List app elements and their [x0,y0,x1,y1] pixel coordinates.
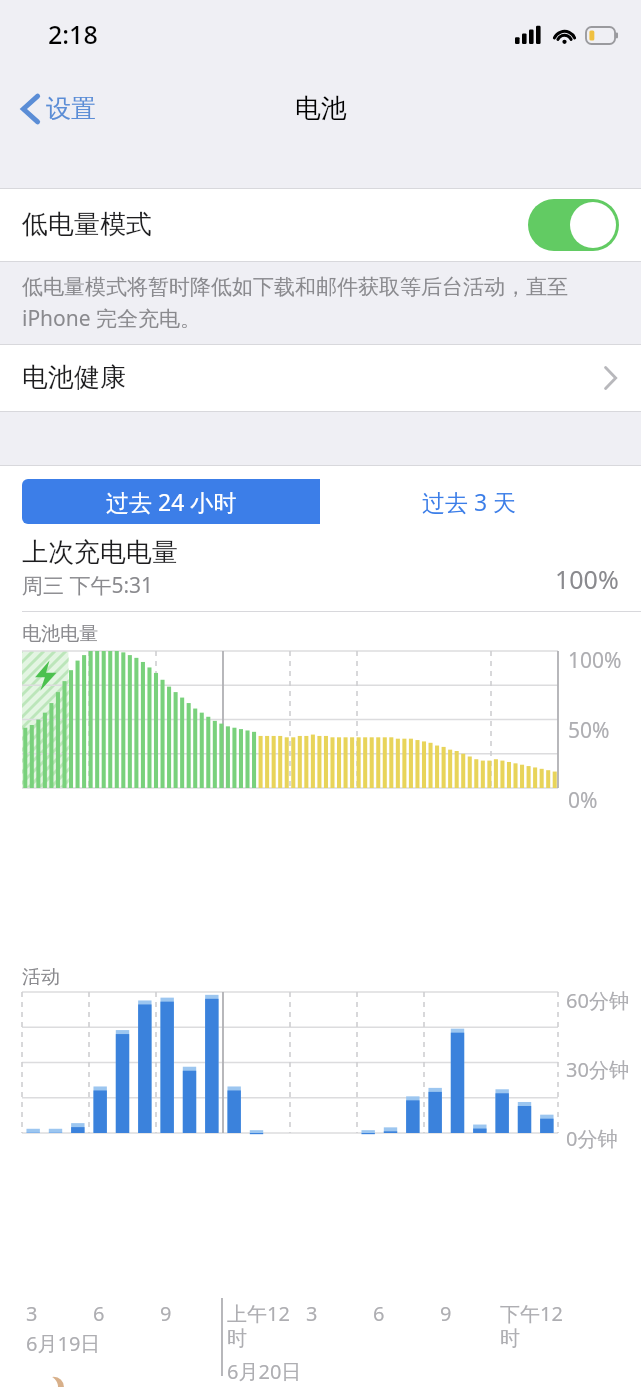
staticText: 低电量模式 [22,208,152,241]
staticText: 60分钟 [566,987,629,1014]
staticText: 2:18 [48,17,98,51]
staticText: 6 [93,1300,105,1327]
staticText: 0分钟 [566,1125,618,1152]
staticText: 100% [555,562,619,596]
staticText: 30分钟 [566,1056,629,1083]
staticText: 上午12 时 [227,1300,290,1351]
staticText: 低电量模式将暂时降低如下载和邮件获取等后台活动，直至 iPhone 完全充电。 [22,272,617,332]
staticText: 6月20日 [227,1358,302,1385]
button[interactable]: 过去 3 天 [320,479,619,524]
staticText: 3 [26,1300,38,1327]
staticText: 周三 下午5:31 [22,571,154,600]
staticText: 电池健康 [22,361,126,394]
staticText: 0% [568,786,598,815]
staticText: 3 [306,1300,318,1327]
staticText: 50% [568,716,610,745]
staticText: 上次充电电量 [22,536,178,569]
staticText: 9 [440,1300,452,1327]
staticText: 电池电量 [22,622,98,646]
staticText: 下午12 时 [500,1300,563,1351]
staticText: 活动 [22,965,60,989]
staticText: 9 [160,1300,172,1327]
staticText: 过去 24 小时 [106,486,237,517]
staticText: 设置 [46,93,96,124]
button[interactable]: 过去 24 小时 [22,479,320,524]
staticText: 电池 [295,92,347,125]
staticText: 6 [373,1300,385,1327]
staticText: 100% [568,646,622,675]
button[interactable]: 电池健康 [0,344,641,411]
button[interactable]: 设置 [18,87,100,130]
staticText: 6月19日 [26,1330,101,1357]
staticText: 过去 3 天 [422,486,517,517]
button[interactable]: 低电量模式 [0,188,641,261]
